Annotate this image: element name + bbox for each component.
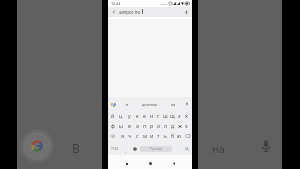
staticText: ю — [177, 132, 182, 139]
button[interactable]: Home — [146, 159, 155, 168]
staticText: ь — [164, 132, 167, 139]
button[interactable]: ф — [109, 120, 117, 130]
staticText: й — [111, 112, 115, 119]
button[interactable]: щ — [169, 110, 176, 120]
staticText: х — [185, 112, 188, 119]
staticText: с — [136, 132, 139, 139]
button[interactable]: Back — [110, 8, 118, 16]
button[interactable]: Comma — [121, 141, 130, 156]
staticText: ц — [119, 112, 123, 119]
button[interactable]: я — [118, 130, 126, 141]
staticText: ?123 — [111, 146, 119, 151]
staticText: о — [157, 122, 161, 129]
button[interactable]: б — [169, 130, 176, 141]
button[interactable]: ш — [162, 110, 169, 120]
staticText: ч — [128, 132, 132, 139]
button[interactable]: к — [133, 110, 141, 120]
button[interactable]: ж — [176, 120, 183, 130]
button[interactable]: в — [125, 120, 133, 130]
button[interactable]: ?123 — [108, 141, 121, 156]
staticText: 12:44 — [111, 1, 121, 6]
staticText: я — [121, 132, 124, 139]
button[interactable]: Voice input — [184, 101, 190, 107]
staticText: е — [143, 112, 146, 119]
button[interactable]: Русский — [140, 146, 172, 152]
button[interactable]: Shift — [108, 130, 118, 141]
button[interactable]: з — [176, 110, 183, 120]
staticText: В — [72, 140, 80, 156]
button[interactable]: у — [125, 110, 133, 120]
staticText: ш — [163, 112, 168, 119]
staticText: л — [164, 122, 168, 129]
staticText: ж — [178, 122, 182, 129]
button[interactable]: Voice search — [182, 8, 190, 16]
staticText: и — [150, 132, 154, 139]
staticText: б — [171, 132, 175, 139]
staticText: к — [136, 112, 139, 119]
staticText: з — [178, 112, 181, 119]
staticText: н — [150, 112, 154, 119]
button[interactable]: Back — [169, 159, 178, 168]
staticText: ы — [119, 122, 123, 129]
button[interactable]: н — [148, 110, 155, 120]
staticText: , — [125, 148, 127, 154]
button[interactable]: ы — [117, 120, 125, 130]
staticText: щ — [170, 112, 175, 119]
button[interactable]: Period — [172, 141, 182, 156]
staticText: г — [157, 112, 160, 119]
button[interactable]: э — [183, 120, 190, 130]
staticText: VoLTE — [160, 2, 168, 5]
button[interactable]: Recents — [122, 159, 131, 168]
staticText: д — [171, 122, 175, 129]
button[interactable]: ь — [162, 130, 169, 141]
button[interactable]: а — [133, 120, 141, 130]
staticText: э — [185, 122, 188, 129]
staticText: в — [128, 122, 131, 129]
staticText: Русский — [150, 147, 163, 151]
button[interactable]: запрос по — [119, 9, 141, 15]
button[interactable]: л — [162, 120, 169, 130]
staticText: т — [157, 132, 160, 139]
button[interactable]: Switch language — [130, 141, 140, 156]
button[interactable]: с — [134, 130, 141, 141]
staticText: а — [136, 122, 139, 129]
button[interactable]: д — [169, 120, 176, 130]
button[interactable]: ц — [117, 110, 125, 120]
button[interactable]: Google — [110, 101, 117, 108]
button[interactable]: х — [183, 110, 190, 120]
button[interactable]: е — [141, 110, 148, 120]
staticText: м — [143, 132, 147, 139]
button[interactable]: г — [155, 110, 162, 120]
button[interactable]: в — [126, 102, 129, 107]
staticText: ф — [111, 122, 115, 129]
staticText: на — [212, 141, 225, 156]
staticText: . — [176, 146, 178, 152]
button[interactable]: длинная — [142, 102, 158, 107]
button[interactable]: п — [141, 120, 148, 130]
button[interactable]: о — [155, 120, 162, 130]
button[interactable]: на — [171, 102, 176, 107]
staticText: у — [128, 112, 131, 119]
staticText: п — [143, 122, 147, 129]
button[interactable]: р — [148, 120, 155, 130]
button[interactable]: Backspace — [183, 130, 192, 141]
button[interactable]: Search — [182, 141, 192, 156]
button[interactable]: м — [141, 130, 148, 141]
staticText: р — [150, 122, 154, 129]
button[interactable]: ю — [176, 130, 183, 141]
button[interactable]: т — [155, 130, 162, 141]
button[interactable]: и — [148, 130, 155, 141]
button[interactable]: й — [109, 110, 117, 120]
button[interactable]: ч — [126, 130, 134, 141]
